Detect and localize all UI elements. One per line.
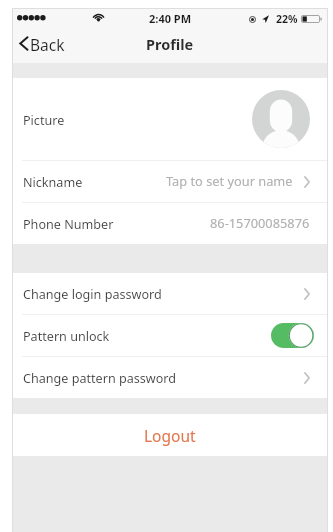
button[interactable]: Profile picture: [252, 90, 310, 148]
staticText: 2:40 PM: [149, 11, 192, 26]
button[interactable]: Picture: [13, 78, 327, 160]
button[interactable]: Phone Number: [13, 203, 327, 244]
staticText: 86-15700085876: [210, 214, 310, 231]
staticText: Nickname: [23, 174, 83, 191]
staticText: Change login password: [23, 286, 162, 303]
staticText: Tap to set your name: [166, 172, 293, 189]
button[interactable]: Back: [13, 28, 77, 63]
button[interactable]: Pattern unlock: [13, 315, 327, 356]
button[interactable]: Nickname: [13, 161, 327, 202]
button[interactable]: Change login password: [13, 273, 327, 314]
button[interactable]: Logout: [13, 414, 327, 456]
staticText: Picture: [23, 112, 65, 129]
staticText: 22%: [276, 12, 298, 26]
staticText: Back: [30, 34, 65, 55]
staticText: Pattern unlock: [23, 328, 110, 345]
staticText: Change pattern password: [23, 370, 177, 387]
staticText: Profile: [146, 34, 194, 54]
staticText: Phone Number: [23, 216, 114, 233]
button[interactable]: Pattern unlock toggle: [271, 323, 314, 348]
staticText: Logout: [144, 425, 196, 446]
button[interactable]: Change pattern password: [13, 357, 327, 398]
